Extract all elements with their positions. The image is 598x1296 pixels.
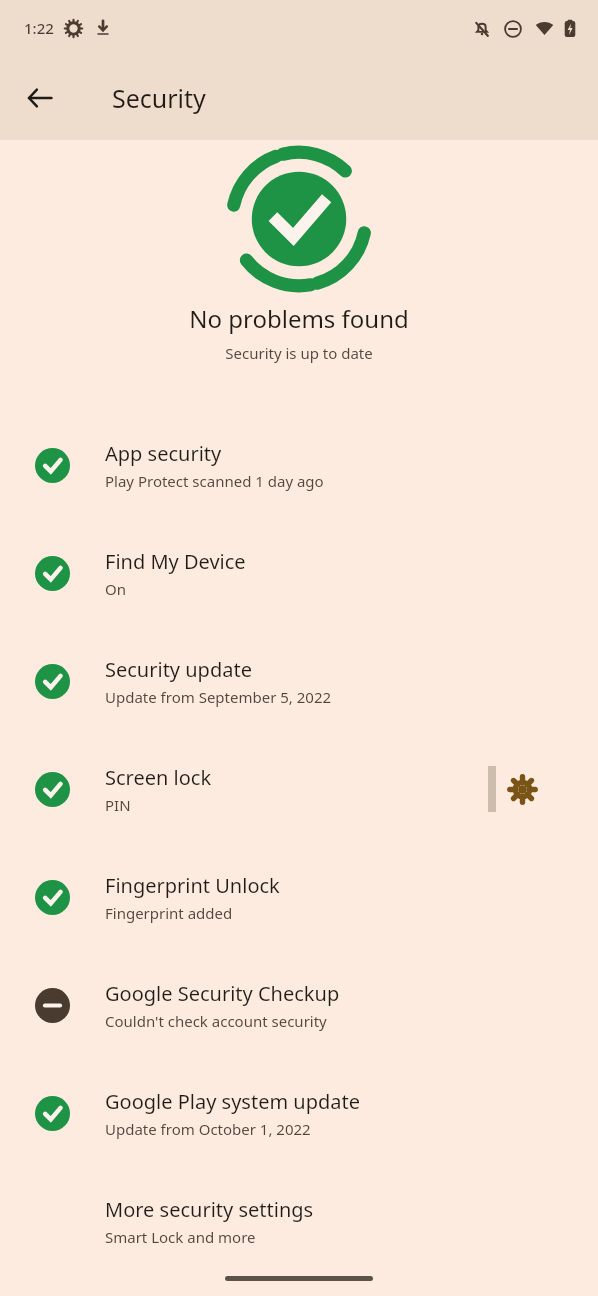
staticText: Security update [105, 656, 252, 683]
button[interactable]: Screen lock settings [496, 763, 548, 815]
button[interactable]: Find My Device [0, 519, 598, 627]
staticText: 1:22 [24, 18, 54, 38]
button[interactable]: More security settings [0, 1167, 598, 1275]
staticText: Smart Lock and more [105, 1227, 256, 1247]
staticText: Security [112, 81, 206, 115]
staticText: Fingerprint Unlock [105, 872, 280, 899]
staticText: Couldn't check account security [105, 1011, 327, 1031]
staticText: Play Protect scanned 1 day ago [105, 471, 324, 491]
staticText: Find My Device [105, 548, 246, 575]
staticText: Google Security Checkup [105, 980, 340, 1007]
button[interactable]: App security [0, 411, 598, 519]
button[interactable]: Back [12, 70, 68, 126]
staticText: PIN [105, 795, 131, 815]
button[interactable]: Fingerprint Unlock [0, 843, 598, 951]
staticText: Screen lock [105, 764, 212, 791]
staticText: Google Play system update [105, 1088, 361, 1115]
button[interactable]: Screen lock [0, 735, 598, 843]
staticText: Update from October 1, 2022 [105, 1119, 311, 1139]
staticText: Security is up to date [225, 343, 373, 363]
button[interactable]: Security update [0, 627, 598, 735]
staticText: Update from September 5, 2022 [105, 687, 332, 707]
staticText: App security [105, 440, 222, 467]
staticText: More security settings [105, 1196, 314, 1223]
staticText: Fingerprint added [105, 903, 233, 923]
button[interactable]: Google Play system update [0, 1059, 598, 1167]
staticText: No problems found [189, 302, 409, 335]
button[interactable]: Google Security Checkup [0, 951, 598, 1059]
staticText: On [105, 579, 126, 599]
